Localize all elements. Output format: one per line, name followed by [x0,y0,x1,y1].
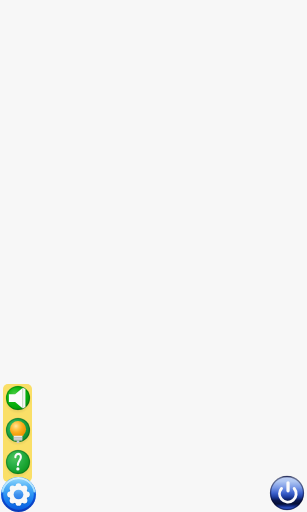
button[interactable]: Sound [6,386,30,410]
button[interactable]: Settings [1,477,36,512]
button[interactable]: Help [6,450,30,474]
button[interactable]: Power [270,476,304,510]
button[interactable]: Hint [6,418,30,442]
